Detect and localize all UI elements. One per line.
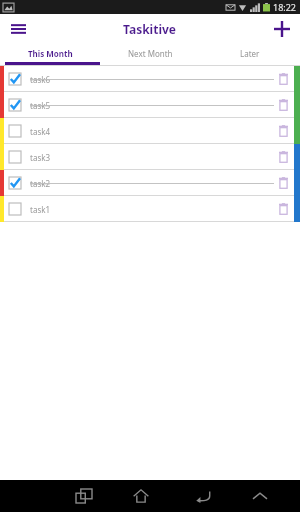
- staticText: task1: [30, 204, 51, 215]
- button[interactable]: Next Month: [100, 44, 200, 62]
- staticText: task3: [30, 152, 51, 163]
- button[interactable]: Delete task5: [274, 96, 292, 114]
- button[interactable]: Delete task1: [274, 200, 292, 218]
- staticText: task5: [30, 100, 51, 111]
- button[interactable]: Delete task2: [274, 174, 292, 192]
- button[interactable]: Delete task6: [274, 70, 292, 88]
- button[interactable]: Recent apps: [58, 480, 110, 512]
- button[interactable]: Toggle task5: [6, 96, 24, 114]
- button[interactable]: Home: [110, 480, 172, 512]
- button[interactable]: Toggle task1: [6, 200, 24, 218]
- staticText: task6: [30, 74, 51, 85]
- staticText: Next Month: [128, 48, 173, 59]
- button[interactable]: Toggle task2: [0, 170, 300, 196]
- button[interactable]: Toggle task6: [6, 70, 24, 88]
- button[interactable]: Toggle task4: [6, 122, 24, 140]
- staticText: task4: [30, 126, 51, 137]
- button[interactable]: Delete task4: [274, 122, 292, 140]
- button[interactable]: Later: [200, 44, 300, 62]
- button[interactable]: Toggle task3: [0, 144, 300, 170]
- staticText: 18:22: [273, 1, 297, 13]
- staticText: This Month: [28, 48, 73, 59]
- button[interactable]: Menu: [6, 17, 30, 41]
- staticText: task2: [30, 178, 51, 189]
- button[interactable]: Delete task3: [274, 148, 292, 166]
- button[interactable]: Toggle task2: [6, 174, 24, 192]
- staticText: Later: [240, 48, 260, 59]
- button[interactable]: Toggle task1: [0, 196, 300, 222]
- button[interactable]: Toggle task4: [0, 118, 300, 144]
- button[interactable]: This Month: [0, 44, 100, 62]
- button[interactable]: Toggle task5: [0, 92, 300, 118]
- button[interactable]: Toggle task3: [6, 148, 24, 166]
- staticText: Taskitive: [123, 21, 177, 37]
- button[interactable]: Back: [172, 480, 234, 512]
- button[interactable]: Toggle task6: [0, 66, 300, 92]
- button[interactable]: Add task: [270, 17, 294, 41]
- button[interactable]: Expand: [234, 480, 286, 512]
